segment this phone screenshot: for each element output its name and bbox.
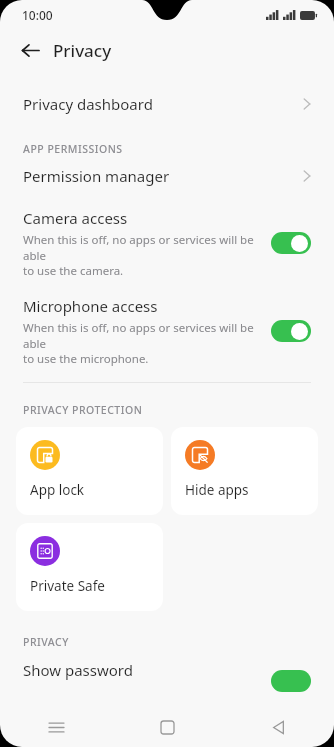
button[interactable]: Show password — [0, 657, 334, 683]
staticText: Private Safe — [30, 577, 105, 595]
staticText: App lock — [30, 481, 85, 499]
button[interactable]: Toggle — [271, 320, 311, 342]
staticText: PRIVACY PROTECTION — [23, 403, 143, 417]
staticText: Privacy dashboard — [23, 94, 303, 114]
staticText: PRIVACY — [23, 635, 69, 649]
button[interactable]: App lock — [16, 427, 163, 515]
button[interactable]: Recent apps — [0, 707, 112, 747]
staticText: When this is off, no apps or services wi… — [23, 232, 261, 278]
button[interactable]: Camera access — [0, 206, 334, 280]
staticText: When this is off, no apps or services wi… — [23, 320, 261, 366]
button[interactable]: Privacy dashboard — [0, 84, 334, 124]
staticText: Hide apps — [185, 481, 249, 499]
staticText: Microphone access — [23, 296, 158, 316]
staticText: Privacy — [53, 39, 112, 62]
staticText: Show password — [23, 660, 271, 680]
button[interactable]: Toggle — [271, 232, 311, 254]
button[interactable]: Back — [223, 707, 334, 747]
button[interactable]: Home — [112, 707, 223, 747]
button[interactable]: Back — [12, 32, 48, 68]
staticText: Permission manager — [23, 166, 303, 186]
button[interactable]: Permission manager — [0, 156, 334, 196]
button[interactable]: Private Safe — [16, 523, 163, 611]
button[interactable]: Microphone access — [0, 294, 334, 368]
button[interactable]: Hide apps — [171, 427, 318, 515]
staticText: 10:00 — [22, 7, 53, 23]
staticText: APP PERMISSIONS — [23, 142, 123, 156]
staticText: Camera access — [23, 208, 128, 228]
